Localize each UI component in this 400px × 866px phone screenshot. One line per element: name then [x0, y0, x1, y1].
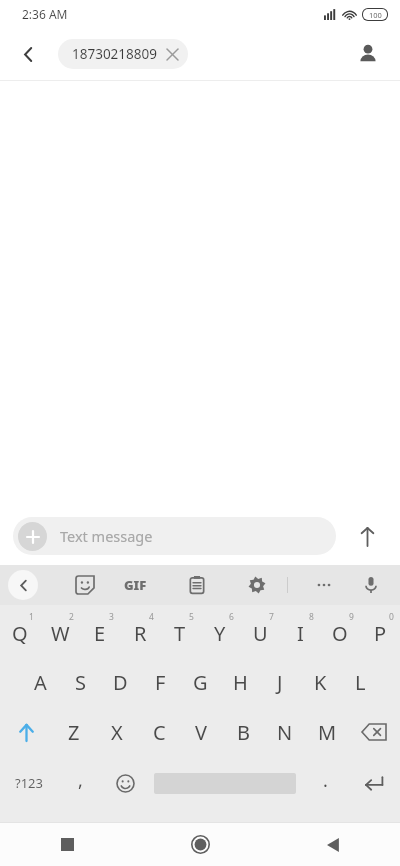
- button[interactable]: E: [80, 605, 120, 657]
- button[interactable]: B: [222, 707, 264, 757]
- button[interactable]: F: [140, 657, 180, 707]
- button[interactable]: R: [120, 605, 160, 657]
- button[interactable]: C: [138, 707, 180, 757]
- staticText: 6: [229, 611, 234, 623]
- button[interactable]: Enter: [348, 757, 400, 809]
- button[interactable]: T: [160, 605, 200, 657]
- button[interactable]: Clipboard: [180, 568, 214, 602]
- staticText: 2:36 AM: [22, 6, 68, 22]
- button[interactable]: Back: [10, 36, 46, 72]
- staticText: 8: [309, 611, 314, 623]
- button[interactable]: Q: [0, 605, 40, 657]
- button[interactable]: H: [220, 657, 260, 707]
- staticText: I: [297, 620, 304, 647]
- staticText: T: [174, 620, 186, 647]
- button[interactable]: ?123: [0, 757, 58, 809]
- button[interactable]: Voice input: [354, 568, 388, 602]
- button[interactable]: Home: [134, 823, 267, 866]
- button[interactable]: Z: [52, 707, 95, 757]
- staticText: J: [277, 669, 283, 696]
- staticText: Z: [68, 719, 80, 746]
- staticText: D: [113, 669, 128, 696]
- staticText: 7: [269, 611, 274, 623]
- staticText: Text message: [60, 526, 153, 546]
- button[interactable]: V: [180, 707, 222, 757]
- staticText: F: [155, 669, 166, 696]
- button[interactable]: M: [306, 707, 348, 757]
- staticText: 18730218809: [72, 45, 157, 63]
- staticText: A: [34, 669, 47, 696]
- staticText: P: [374, 620, 387, 647]
- button[interactable]: X: [95, 707, 138, 757]
- staticText: O: [332, 620, 348, 647]
- button[interactable]: U: [240, 605, 280, 657]
- button[interactable]: O: [320, 605, 360, 657]
- staticText: K: [314, 669, 327, 696]
- button[interactable]: N: [264, 707, 306, 757]
- staticText: U: [253, 620, 268, 647]
- button[interactable]: A: [20, 657, 60, 707]
- button[interactable]: Contact: [350, 36, 386, 72]
- staticText: 4: [149, 611, 154, 623]
- staticText: G: [193, 669, 208, 696]
- staticText: 2: [69, 611, 74, 623]
- staticText: R: [134, 620, 147, 647]
- staticText: W: [51, 620, 70, 647]
- staticText: E: [94, 620, 106, 647]
- button[interactable]: .: [302, 757, 348, 809]
- staticText: X: [111, 719, 123, 746]
- staticText: 5: [189, 611, 194, 623]
- button[interactable]: Back: [267, 823, 400, 866]
- staticText: V: [195, 719, 207, 746]
- staticText: 1: [29, 611, 34, 623]
- button[interactable]: More: [307, 568, 341, 602]
- button[interactable]: D: [100, 657, 140, 707]
- button[interactable]: 18730218809: [58, 39, 188, 69]
- button[interactable]: GIF: [118, 568, 152, 602]
- staticText: Q: [12, 620, 28, 647]
- button[interactable]: S: [60, 657, 100, 707]
- button[interactable]: L: [340, 657, 380, 707]
- button[interactable]: Stickers: [68, 568, 102, 602]
- staticText: 3: [109, 611, 114, 623]
- staticText: 100: [369, 10, 382, 20]
- button[interactable]: Backspace: [348, 707, 400, 757]
- staticText: 0: [389, 611, 394, 623]
- button[interactable]: W: [40, 605, 80, 657]
- staticText: L: [355, 669, 366, 696]
- button[interactable]: G: [180, 657, 220, 707]
- staticText: Y: [214, 620, 226, 647]
- button[interactable]: Settings: [240, 568, 274, 602]
- button[interactable]: Y: [200, 605, 240, 657]
- button[interactable]: Send: [347, 516, 387, 556]
- button[interactable]: Emoji: [102, 757, 148, 809]
- staticText: S: [75, 669, 86, 696]
- staticText: N: [277, 719, 293, 746]
- button[interactable]: I: [280, 605, 320, 657]
- button[interactable]: Shift: [0, 707, 52, 757]
- staticText: ?123: [15, 774, 43, 792]
- staticText: B: [237, 719, 250, 746]
- button[interactable]: Close toolbar: [8, 570, 38, 600]
- button[interactable]: ,: [58, 757, 102, 809]
- staticText: C: [153, 719, 166, 746]
- button[interactable]: P: [360, 605, 400, 657]
- staticText: .: [323, 768, 328, 793]
- button[interactable]: Recents: [0, 823, 134, 866]
- staticText: ,: [78, 768, 83, 793]
- button[interactable]: K: [300, 657, 340, 707]
- staticText: GIF: [124, 576, 147, 594]
- button[interactable]: Text message: [13, 517, 336, 555]
- button[interactable]: J: [260, 657, 300, 707]
- staticText: H: [233, 669, 248, 696]
- staticText: M: [318, 719, 337, 746]
- staticText: 9: [349, 611, 354, 623]
